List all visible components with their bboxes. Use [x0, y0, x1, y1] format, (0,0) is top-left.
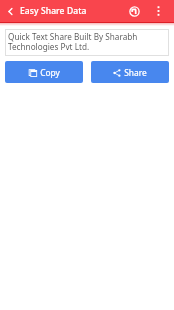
button[interactable]: Back	[0, 0, 21, 22]
button[interactable]: Copy	[5, 61, 83, 83]
button[interactable]: Restore	[123, 0, 145, 22]
staticText: Share	[124, 67, 147, 78]
staticText: Copy	[40, 67, 60, 78]
staticText: Easy Share Data	[20, 5, 87, 17]
button[interactable]: Quick Text Share Built By Sharabh Techno…	[5, 29, 169, 56]
staticText: Quick Text Share Built By Sharabh Techno…	[8, 31, 166, 52]
button[interactable]: Share	[91, 61, 169, 83]
button[interactable]: More options	[148, 0, 168, 22]
